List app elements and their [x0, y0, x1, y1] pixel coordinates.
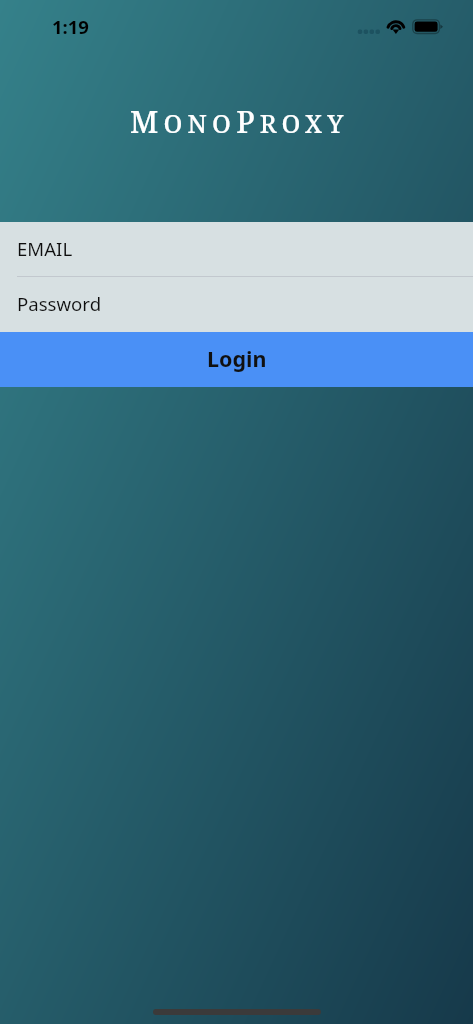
staticText: EMAIL [17, 236, 73, 261]
staticText: MONOPROXY [130, 101, 349, 142]
staticText: Login [207, 344, 267, 373]
other: Cellular signal [357, 28, 380, 35]
button[interactable]: Password [0, 277, 473, 332]
button[interactable]: EMAIL [0, 222, 473, 277]
staticText: Password [17, 291, 102, 316]
button[interactable]: Login [0, 332, 473, 387]
other: Battery full [411, 18, 444, 35]
staticText: 1:19 [52, 14, 89, 39]
other: Wi-Fi [385, 18, 407, 35]
